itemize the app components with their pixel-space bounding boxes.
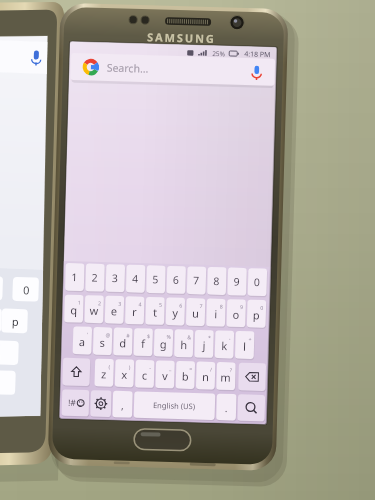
button[interactable]: Photo of a Samsung phone on a table bbox=[0, 0, 375, 500]
